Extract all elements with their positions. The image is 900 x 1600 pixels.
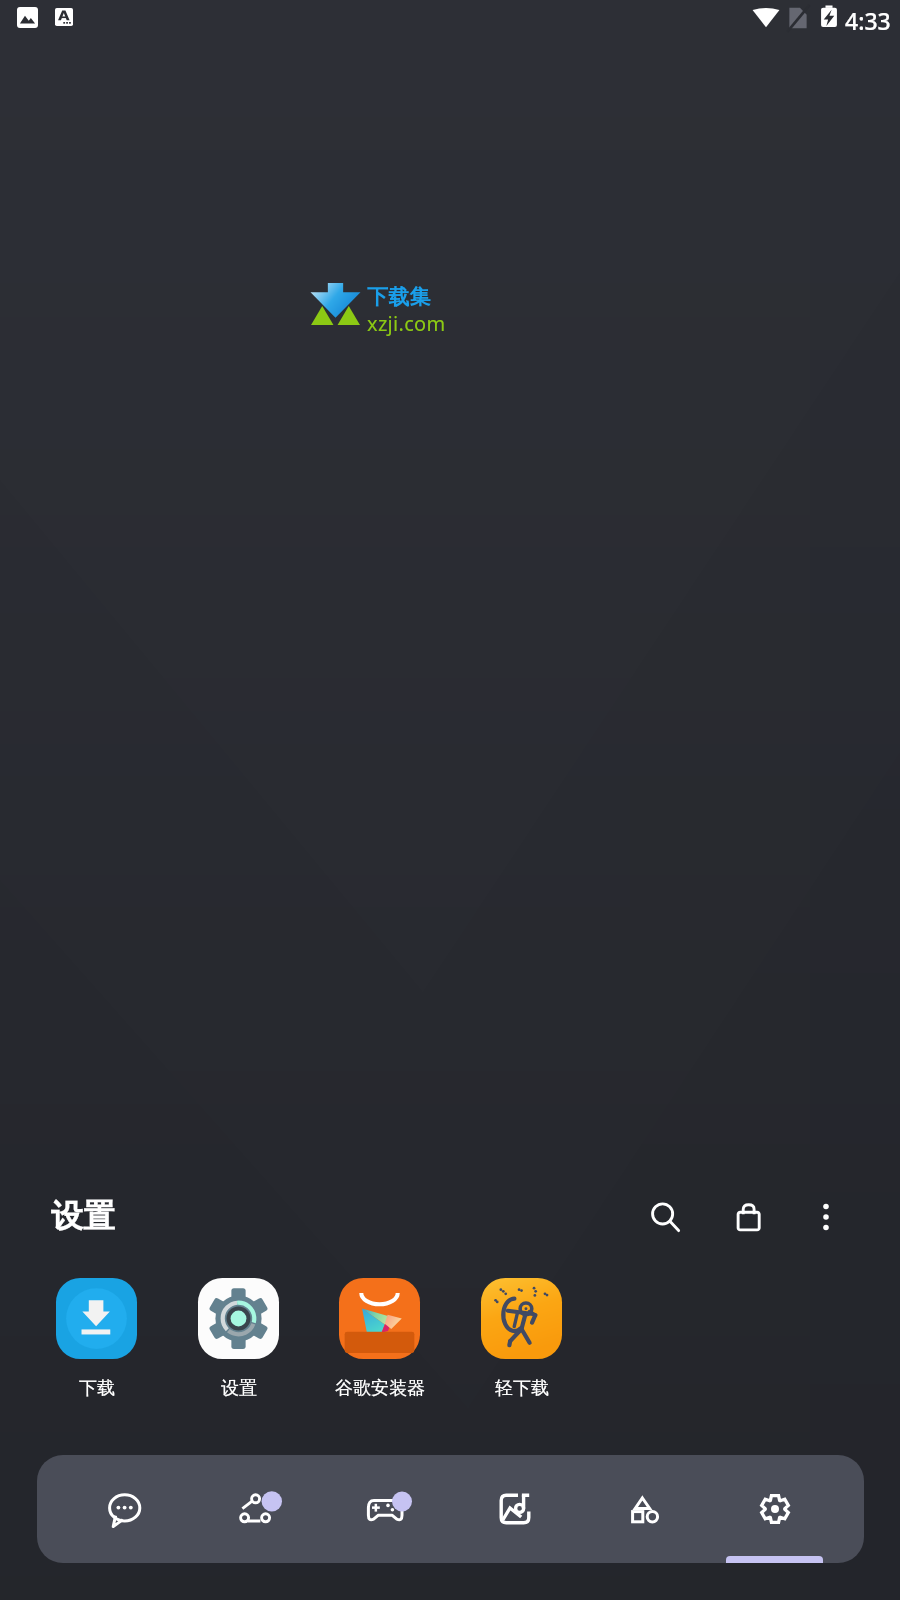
staticText: 轻下载 [495, 1377, 549, 1400]
button[interactable]: Games [354, 1455, 420, 1563]
staticText: 4:33 [845, 5, 891, 36]
button[interactable]: Search [637, 1189, 693, 1245]
button[interactable]: 谷歌安装器 [319, 1273, 440, 1400]
button[interactable]: Chat [92, 1455, 158, 1563]
button[interactable]: Shop [721, 1189, 777, 1245]
button[interactable]: 设置 [178, 1273, 299, 1400]
button[interactable]: More options [798, 1189, 854, 1245]
staticText: 下载 [79, 1377, 115, 1400]
staticText: 谷歌安装器 [335, 1377, 425, 1400]
staticText: 设置 [51, 1196, 115, 1236]
button[interactable]: 轻下载 [461, 1273, 582, 1400]
staticText: 下载集 [367, 284, 431, 310]
staticText: xzji.com [367, 310, 446, 337]
button[interactable]: Shapes [612, 1455, 678, 1563]
button[interactable]: Media [482, 1455, 548, 1563]
button[interactable]: 下载 [36, 1273, 157, 1400]
button[interactable]: Settings [742, 1455, 808, 1563]
staticText: 设置 [221, 1377, 257, 1400]
button[interactable]: Connections [225, 1455, 291, 1563]
